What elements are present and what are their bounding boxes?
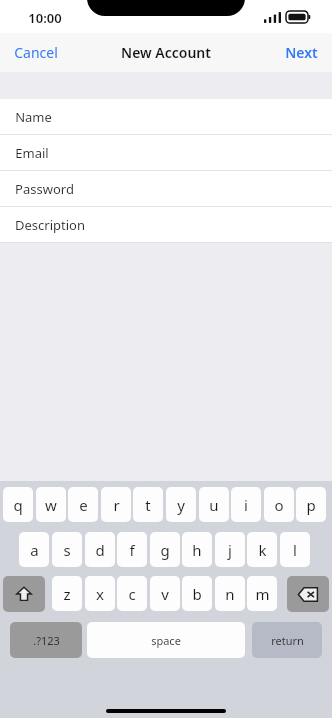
staticText: t — [145, 495, 151, 515]
button[interactable]: Password — [0, 171, 332, 207]
staticText: p — [306, 495, 316, 515]
staticText: Next — [285, 43, 318, 62]
staticText: d — [95, 540, 105, 560]
staticText: return — [271, 633, 304, 648]
button[interactable]: v — [150, 576, 180, 611]
staticText: j — [228, 540, 232, 560]
button[interactable]: n — [215, 576, 245, 611]
button[interactable]: h — [182, 532, 212, 567]
button[interactable]: u — [199, 487, 229, 522]
button[interactable]: a — [19, 532, 49, 567]
staticText: 10:00 — [28, 9, 62, 27]
button[interactable]: l — [280, 532, 310, 567]
staticText: k — [258, 540, 267, 560]
button[interactable]: o — [264, 487, 294, 522]
staticText: b — [192, 584, 202, 604]
staticText: g — [160, 540, 170, 560]
staticText: New Account — [121, 43, 211, 62]
button[interactable]: k — [247, 532, 277, 567]
button[interactable]: return — [252, 622, 322, 658]
button[interactable]: z — [52, 576, 82, 611]
staticText: Cancel — [14, 43, 58, 62]
button[interactable]: c — [117, 576, 147, 611]
button[interactable]: Cancel — [0, 36, 72, 69]
staticText: s — [63, 540, 71, 560]
staticText: l — [293, 540, 297, 560]
staticText: r — [113, 495, 120, 515]
button[interactable]: m — [247, 576, 277, 611]
staticText: q — [13, 495, 23, 515]
staticText: .?123 — [33, 633, 60, 648]
button[interactable]: t — [133, 487, 163, 522]
staticText: w — [45, 495, 57, 515]
button[interactable]: f — [117, 532, 147, 567]
staticText: i — [244, 495, 248, 515]
button[interactable]: g — [150, 532, 180, 567]
staticText: x — [96, 584, 104, 604]
staticText: u — [209, 495, 219, 515]
button[interactable]: Next — [271, 36, 332, 69]
button[interactable]: q — [3, 487, 33, 522]
button[interactable]: Description — [0, 207, 332, 243]
staticText: f — [129, 540, 135, 560]
staticText: m — [255, 584, 270, 604]
button[interactable]: s — [52, 532, 82, 567]
button[interactable]: p — [296, 487, 326, 522]
staticText: z — [63, 584, 71, 604]
staticText: e — [79, 495, 88, 515]
button[interactable]: Email — [0, 135, 332, 171]
button[interactable]: j — [215, 532, 245, 567]
staticText: o — [274, 495, 284, 515]
staticText: h — [192, 540, 202, 560]
staticText: Description — [15, 216, 85, 234]
staticText: y — [177, 495, 185, 515]
button[interactable]: space — [87, 622, 245, 658]
button[interactable]: .?123 — [10, 622, 82, 658]
button[interactable]: y — [166, 487, 196, 522]
staticText: space — [151, 633, 181, 648]
button[interactable]: b — [182, 576, 212, 611]
staticText: Email — [15, 144, 49, 162]
staticText: v — [161, 584, 169, 604]
button[interactable]: Backspace — [287, 576, 329, 612]
button[interactable]: e — [68, 487, 98, 522]
staticText: a — [30, 540, 39, 560]
button[interactable]: Name — [0, 99, 332, 135]
button[interactable]: w — [36, 487, 66, 522]
button[interactable]: r — [101, 487, 131, 522]
staticText: n — [225, 584, 235, 604]
staticText: Password — [15, 180, 74, 198]
button[interactable]: i — [231, 487, 261, 522]
staticText: c — [128, 584, 136, 604]
staticText: Name — [15, 108, 52, 126]
button[interactable]: Shift — [3, 576, 45, 612]
button[interactable]: x — [85, 576, 115, 611]
button[interactable]: d — [85, 532, 115, 567]
